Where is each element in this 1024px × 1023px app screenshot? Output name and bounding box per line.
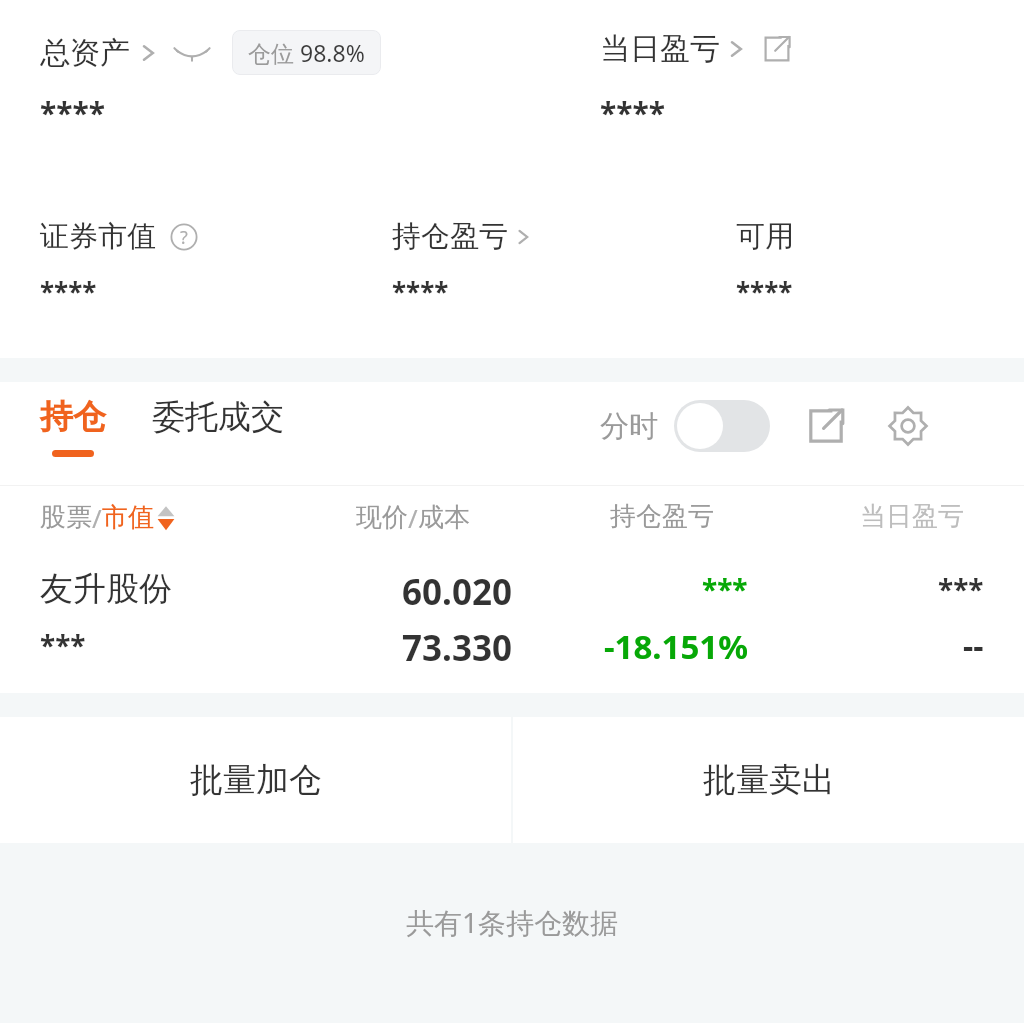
staticText: -18.151% [604, 624, 748, 669]
staticText: **** [40, 274, 97, 309]
staticText: **** [40, 92, 106, 133]
other: Help [170, 223, 198, 251]
staticText: 98.8% [300, 37, 365, 68]
staticText: 友升股份 [40, 568, 172, 610]
button[interactable]: 委托成交 [152, 396, 284, 457]
staticText: 73.330 [402, 624, 512, 672]
staticText: 持仓盈亏 [610, 500, 714, 533]
staticText: 证券市值 [40, 218, 156, 255]
button[interactable]: 当日盈亏 [600, 30, 792, 68]
button[interactable]: Time-sharing toggle [674, 400, 770, 452]
other: Show amounts [172, 41, 212, 65]
button[interactable]: 证券市值 [40, 218, 198, 255]
staticText: 总资产 [40, 34, 130, 72]
staticText: -- [963, 624, 984, 668]
staticText: 60.020 [402, 568, 512, 616]
staticText: 市值 [102, 501, 154, 534]
staticText: *** [938, 570, 984, 608]
button[interactable]: 仓位 [232, 30, 381, 75]
button[interactable]: 批量卖出 [513, 717, 1024, 843]
button[interactable]: 持仓 [40, 396, 106, 457]
button[interactable]: 当日盈亏 [860, 500, 964, 533]
staticText: 当日盈亏 [600, 30, 720, 68]
button[interactable]: 股票 [40, 500, 176, 535]
staticText: 共有1条持仓数据 [406, 903, 619, 941]
staticText: 批量卖出 [703, 759, 835, 801]
staticText: *** [40, 626, 86, 664]
staticText: ? [180, 225, 188, 250]
staticText: 仓位 [248, 37, 300, 68]
staticText: 委托成交 [152, 396, 284, 438]
staticText: 当日盈亏 [860, 500, 964, 533]
staticText: 持仓 [40, 396, 106, 438]
staticText: 股票 [40, 501, 92, 534]
button[interactable]: 持仓盈亏 [610, 500, 714, 533]
staticText: *** [702, 570, 748, 608]
button[interactable]: 现价 [356, 500, 470, 535]
button[interactable]: 友升股份 [0, 548, 1024, 693]
other: Share [762, 34, 792, 64]
staticText: 分时 [600, 408, 658, 445]
staticText: 现价 [356, 501, 408, 534]
button[interactable]: 持仓盈亏 [392, 218, 530, 255]
staticText: / [408, 500, 418, 535]
staticText: 可用 [736, 218, 794, 255]
staticText: 成本 [418, 501, 470, 534]
staticText: **** [736, 274, 793, 309]
staticText: 持仓盈亏 [392, 218, 508, 255]
staticText: / [92, 500, 102, 535]
button[interactable]: 总资产 [40, 30, 381, 75]
button[interactable]: Settings [886, 404, 930, 448]
staticText: **** [392, 274, 449, 309]
staticText: **** [600, 92, 666, 133]
button[interactable]: Share [806, 406, 846, 446]
staticText: 批量加仓 [190, 759, 322, 801]
button[interactable]: 批量加仓 [0, 717, 511, 843]
